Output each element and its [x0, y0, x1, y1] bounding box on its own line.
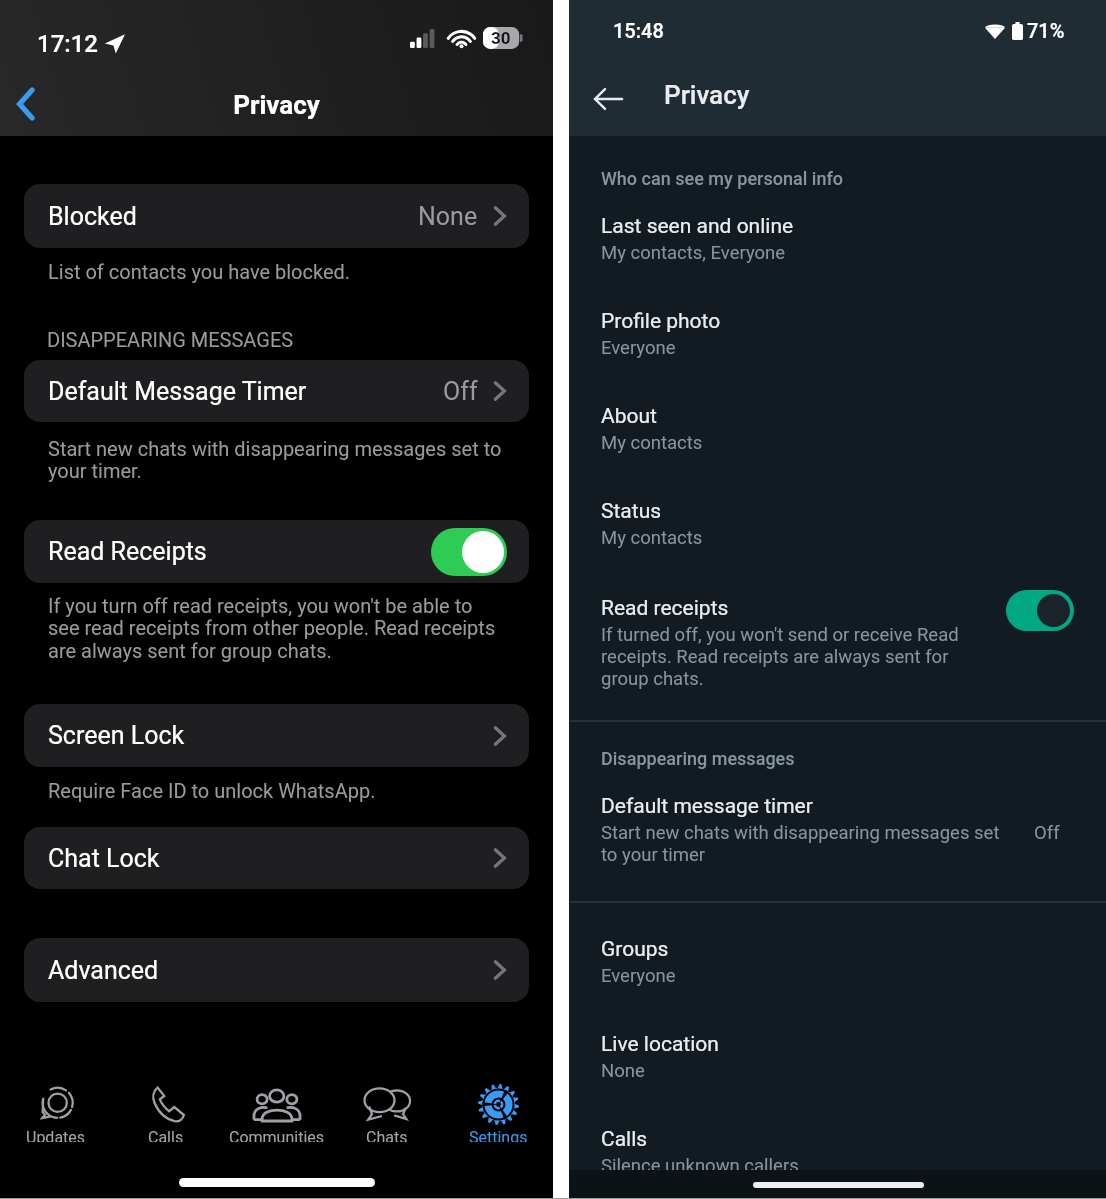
staticText: DISAPPEARING MESSAGES [47, 328, 294, 351]
button[interactable]: Settings [443, 1080, 553, 1142]
staticText: My contacts [601, 527, 703, 549]
staticText: Updates [26, 1128, 86, 1142]
staticText: Off [443, 377, 478, 406]
button[interactable]: Live location [569, 1018, 1106, 1100]
staticText: Chats [366, 1128, 408, 1142]
staticText: Profile photo [601, 309, 721, 334]
staticText: Read receipts [601, 596, 729, 621]
button[interactable] [431, 528, 507, 576]
staticText: Screen Lock [48, 721, 185, 750]
staticText: 15:48 [613, 19, 664, 42]
staticText: My contacts [601, 432, 703, 454]
button[interactable]: Back [4, 82, 48, 126]
staticText: Settings [469, 1128, 528, 1142]
button[interactable]: Advanced [24, 938, 529, 1002]
button[interactable]: Chats [332, 1080, 442, 1142]
staticText: My contacts, Everyone [601, 242, 786, 264]
staticText: Privacy [0, 90, 553, 120]
staticText: Live location [601, 1032, 719, 1057]
button[interactable]: Blocked [24, 184, 529, 248]
staticText: Off [1034, 822, 1060, 844]
staticText: Groups [601, 937, 669, 962]
button[interactable]: Read receipts [569, 582, 1106, 706]
button[interactable]: About [569, 390, 1106, 472]
button[interactable]: Default message timer [569, 780, 1106, 885]
staticText: Default Message Timer [48, 377, 307, 406]
staticText: Start new chats with disappearing messag… [601, 822, 1000, 866]
staticText: 30 [491, 28, 511, 48]
button[interactable]: Calls [111, 1080, 221, 1142]
staticText: Disappearing messages [601, 748, 795, 769]
button[interactable]: Back [581, 72, 635, 126]
staticText: Read Receipts [48, 537, 207, 566]
staticText: 17:12 [37, 30, 98, 58]
button[interactable]: Read Receipts [24, 520, 529, 583]
staticText: None [601, 1060, 645, 1082]
button[interactable]: Groups [569, 923, 1106, 1005]
staticText: None [418, 202, 478, 231]
staticText: Require Face ID to unlock WhatsApp. [48, 779, 543, 802]
button[interactable]: Calls [569, 1113, 1106, 1195]
staticText: Chat Lock [48, 844, 160, 873]
staticText: Everyone [601, 965, 676, 987]
button[interactable]: Screen Lock [24, 704, 529, 767]
staticText: Who can see my personal info [601, 168, 844, 189]
button[interactable]: Communities [222, 1080, 332, 1142]
button[interactable]: Last seen and online [569, 200, 1106, 282]
button[interactable]: Default Message Timer [24, 360, 529, 422]
staticText: Status [601, 499, 662, 524]
staticText: Default message timer [601, 794, 813, 819]
staticText: Calls [148, 1128, 184, 1142]
staticText: About [601, 404, 657, 429]
button[interactable] [1006, 590, 1074, 631]
staticText: Silence unknown callers [601, 1155, 799, 1177]
staticText: Advanced [48, 956, 159, 985]
button[interactable]: Profile photo [569, 295, 1106, 377]
button[interactable]: Chat Lock [24, 827, 529, 889]
button[interactable]: Status [569, 485, 1106, 567]
staticText: If turned off, you won't send or receive… [601, 624, 959, 690]
staticText: List of contacts you have blocked. [48, 260, 543, 283]
staticText: Calls [601, 1127, 648, 1152]
staticText: Last seen and online [601, 214, 794, 239]
button[interactable]: Updates [1, 1080, 111, 1142]
staticText: Communities [229, 1128, 325, 1142]
staticText: Blocked [48, 202, 137, 231]
staticText: Privacy [664, 80, 750, 110]
staticText: Start new chats with disappearing messag… [48, 437, 543, 483]
staticText: Everyone [601, 337, 676, 359]
staticText: 71% [1027, 19, 1065, 42]
staticText: If you turn off read receipts, you won't… [48, 594, 543, 663]
